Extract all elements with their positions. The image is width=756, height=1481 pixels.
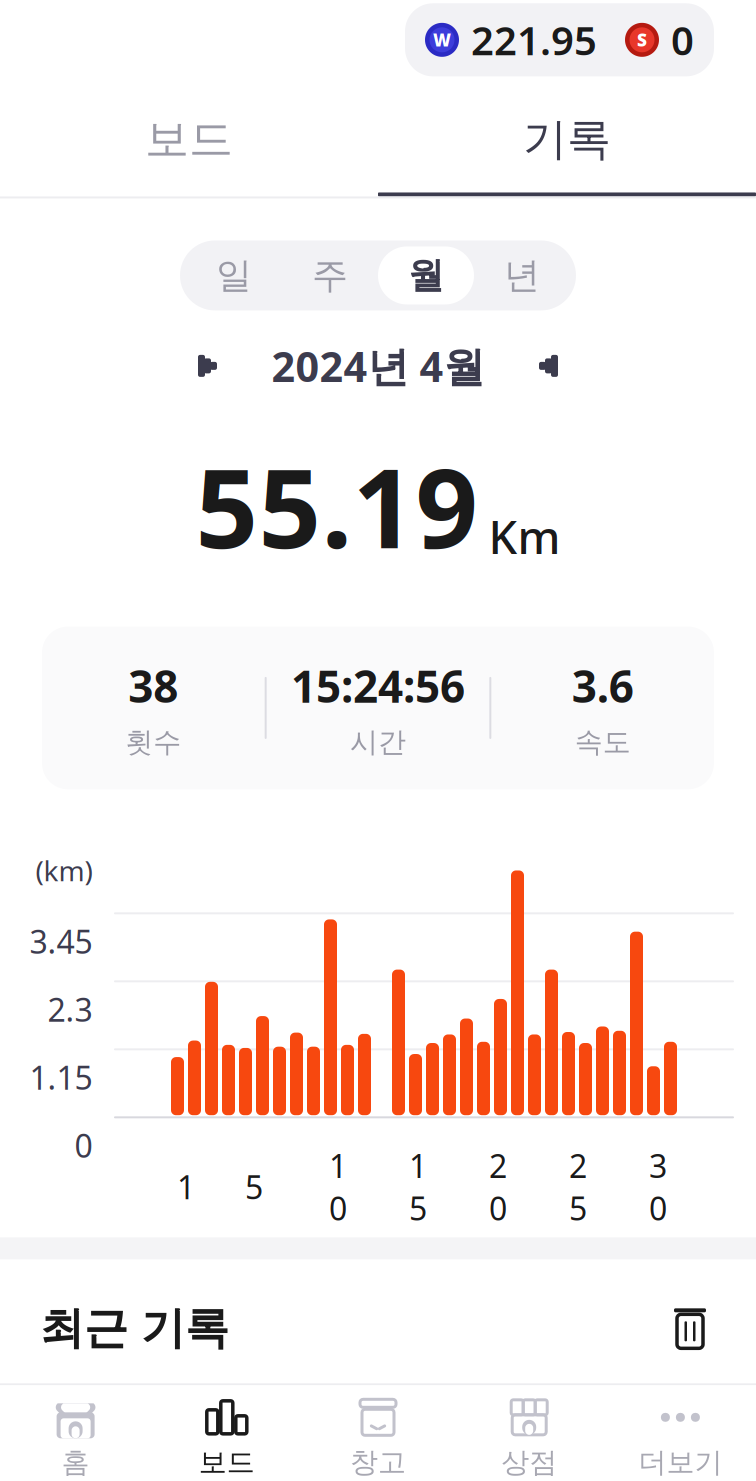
button[interactable]: 기록 — [378, 86, 756, 196]
staticText: 1 — [177, 1166, 195, 1208]
staticText: 2.3 — [47, 988, 92, 1031]
staticText: 20 — [489, 1144, 507, 1229]
staticText: 보드 — [145, 112, 233, 166]
staticText: 38 — [128, 656, 178, 715]
button[interactable]: 기록 삭제 — [664, 1299, 716, 1357]
staticText: 시간 — [350, 725, 406, 759]
staticText: 30 — [649, 1144, 667, 1229]
staticText: W — [433, 28, 451, 51]
staticText: 1.15 — [29, 1056, 92, 1099]
staticText: 횟수 — [125, 725, 181, 759]
button[interactable]: 보드 — [151, 1385, 302, 1481]
button[interactable]: 홈 — [0, 1385, 151, 1481]
button[interactable]: 년 — [474, 246, 570, 304]
staticText: 최근 기록 — [40, 1301, 229, 1355]
staticText: 상점 — [501, 1445, 557, 1480]
staticText: 15 — [409, 1144, 427, 1229]
staticText: Km — [488, 506, 560, 566]
staticText: 속도 — [575, 725, 631, 759]
staticText: 더보기 — [638, 1445, 722, 1480]
staticText: 0 — [74, 1124, 92, 1167]
button[interactable]: 다음 달 — [520, 340, 574, 392]
staticText: 년 — [504, 253, 540, 297]
staticText: 일 — [216, 253, 252, 297]
staticText: (km) — [35, 852, 92, 889]
staticText: 10 — [329, 1144, 347, 1229]
staticText: 홈 — [62, 1445, 90, 1480]
button[interactable]: 이전 달 — [181, 340, 235, 392]
staticText: 월 — [408, 253, 444, 297]
staticText: 15:24:56 — [291, 656, 465, 715]
staticText: 3.45 — [29, 920, 92, 963]
staticText: 55.19 — [195, 433, 478, 578]
staticText: 주 — [312, 253, 348, 297]
staticText: 2024년 4월 — [271, 338, 484, 393]
button[interactable]: 보드 — [0, 86, 378, 196]
button[interactable]: 더보기 — [605, 1385, 756, 1481]
staticText: 보드 — [199, 1445, 255, 1480]
button[interactable]: 월 — [378, 246, 474, 304]
button[interactable]: 일 — [186, 246, 282, 304]
staticText: 창고 — [350, 1445, 406, 1480]
button[interactable]: 주 — [282, 246, 378, 304]
button[interactable]: 창고 — [302, 1385, 454, 1481]
staticText: 3.6 — [572, 656, 634, 715]
button[interactable]: 상점 — [454, 1385, 605, 1481]
staticText: 0 — [671, 13, 694, 66]
staticText: 5 — [245, 1166, 263, 1208]
staticText: 25 — [569, 1144, 587, 1229]
staticText: 기록 — [523, 112, 611, 166]
staticText: 221.95 — [471, 13, 597, 66]
staticText: S — [637, 28, 647, 51]
